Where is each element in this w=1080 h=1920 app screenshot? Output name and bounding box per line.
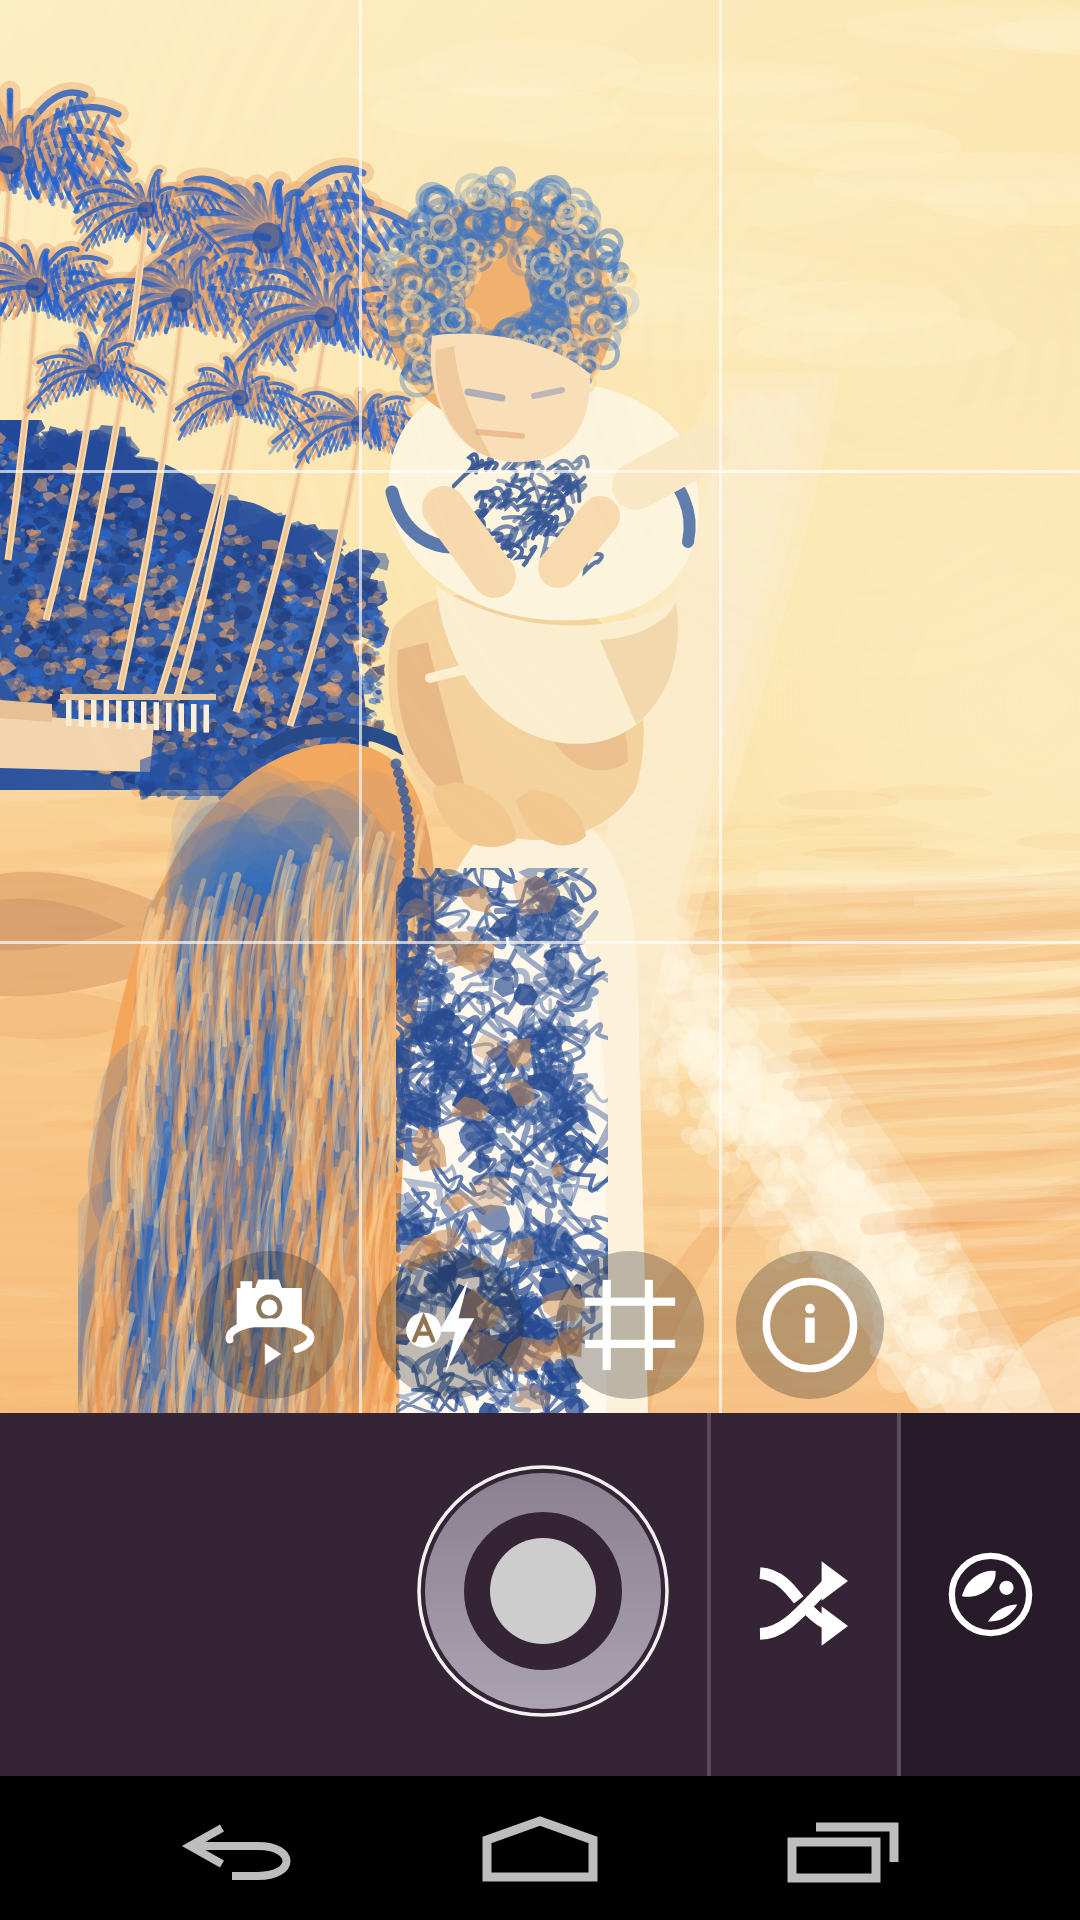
button[interactable]: Shutter (415, 1463, 671, 1719)
button[interactable]: Filters (901, 1413, 1080, 1776)
button[interactable]: Flash auto (376, 1251, 524, 1399)
button[interactable]: Home (360, 1776, 720, 1920)
button[interactable]: Info (736, 1251, 884, 1399)
button[interactable]: Shuffle filters (711, 1413, 897, 1776)
button[interactable]: Back (0, 1776, 360, 1920)
button[interactable]: Switch camera (196, 1251, 344, 1399)
button[interactable]: Recents (720, 1776, 1080, 1920)
button[interactable]: Grid (556, 1251, 704, 1399)
